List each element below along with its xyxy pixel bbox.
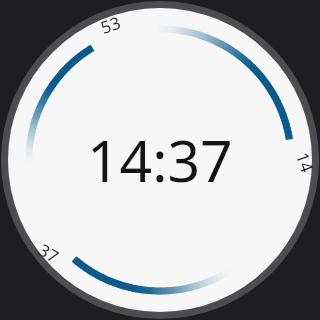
- button[interactable]: Watch face showing 14:37: [0, 0, 320, 320]
